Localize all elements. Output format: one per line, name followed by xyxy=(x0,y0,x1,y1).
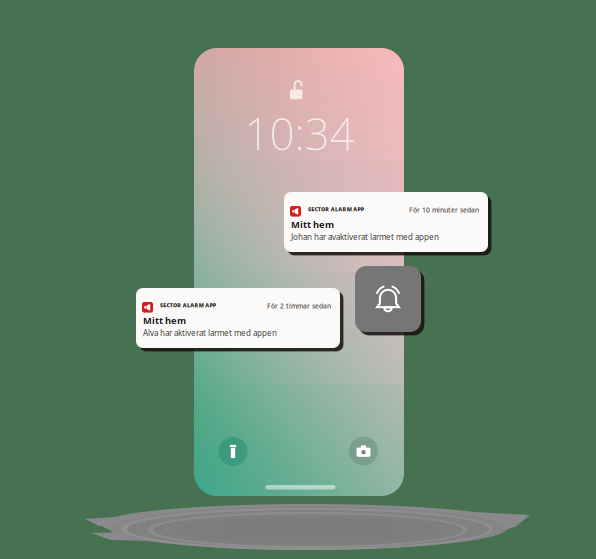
button[interactable]: Notifications xyxy=(355,266,421,332)
staticText: Johan har avaktiverat larmet med appen xyxy=(291,232,439,242)
staticText: SECTOR ALARM APP xyxy=(308,206,364,213)
button[interactable]: Flashlight xyxy=(218,437,247,466)
button[interactable]: SECTOR ALARM APP xyxy=(136,288,340,348)
staticText: För 10 minuter sedan xyxy=(409,206,479,214)
button[interactable]: Camera xyxy=(349,436,378,465)
staticText: SECTOR ALARM APP xyxy=(160,302,216,309)
staticText: För 2 timmar sedan xyxy=(267,302,331,310)
staticText: Mitt hem xyxy=(291,218,334,231)
staticText: Mitt hem xyxy=(143,314,186,327)
staticText: 10:34 xyxy=(244,104,354,162)
staticText: Alva har aktiverat larmet med appen xyxy=(143,328,277,338)
button[interactable]: SECTOR ALARM APP xyxy=(284,192,488,252)
